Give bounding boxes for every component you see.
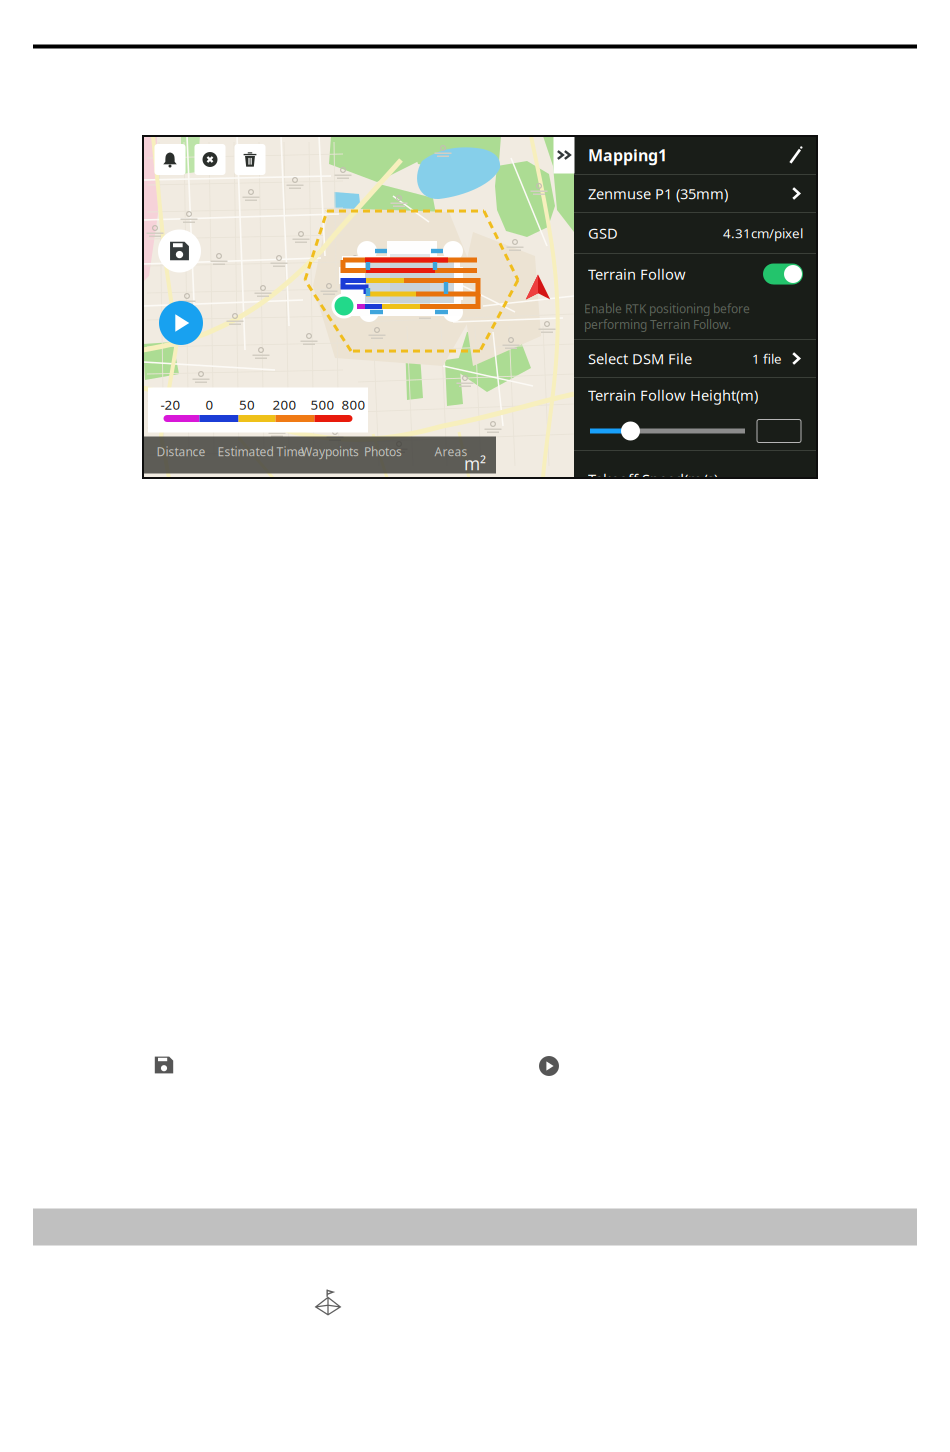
staticText: 800 <box>341 396 365 413</box>
staticText: -20 <box>160 396 180 413</box>
staticText: 4.31cm/pixel <box>723 224 803 242</box>
staticText: Mapping1 <box>588 144 667 166</box>
button[interactable]: Delete <box>234 144 265 175</box>
staticText: Terrain Follow <box>588 264 686 284</box>
staticText: Takeoff Speed(m/s) <box>588 469 718 489</box>
button[interactable]: Collapse panel <box>553 136 574 173</box>
staticText: GSD <box>588 223 618 243</box>
staticText: Select DSM File <box>588 349 692 368</box>
button[interactable]: Mapping1 <box>574 136 817 174</box>
button[interactable]: Start mission <box>159 301 203 345</box>
staticText: Enable RTK positioning before performing… <box>584 301 750 332</box>
button[interactable]: Zenmuse P1 (35mm) <box>574 175 817 212</box>
button[interactable]: Clear <box>194 144 225 175</box>
staticText: Zenmuse P1 (35mm) <box>588 184 728 203</box>
staticText: 0 <box>205 396 213 413</box>
staticText: 1 file <box>752 350 782 367</box>
button[interactable]: Terrain Follow <box>574 254 817 294</box>
button[interactable]: Notifications <box>154 144 185 175</box>
staticText: Waypoints <box>301 443 359 459</box>
staticText: m² <box>464 452 486 475</box>
staticText: Distance <box>156 443 205 459</box>
staticText: Photos <box>364 443 402 459</box>
button[interactable]: Save <box>158 229 201 272</box>
staticText: Terrain Follow Height(m) <box>588 385 758 405</box>
staticText: Areas <box>434 443 467 459</box>
staticText: Estimated Time <box>217 443 304 459</box>
button[interactable]: Select DSM File <box>574 340 817 377</box>
staticText: 500 <box>310 396 334 413</box>
staticText: 200 <box>272 396 296 413</box>
staticText: 50 <box>239 396 255 413</box>
